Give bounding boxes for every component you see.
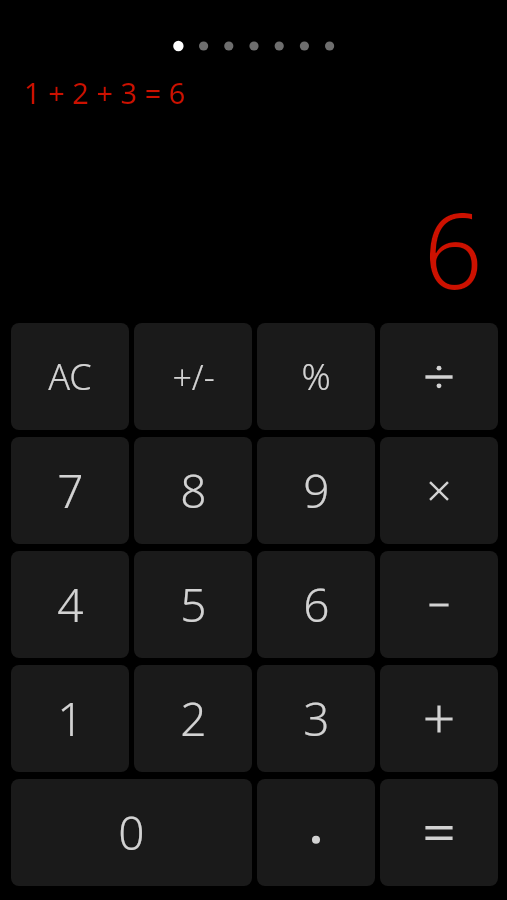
- button[interactable]: 7: [11, 437, 129, 544]
- button[interactable]: 4: [11, 551, 129, 658]
- button[interactable]: 3: [257, 665, 375, 772]
- staticText: AC: [48, 352, 92, 401]
- staticText: +/-: [172, 354, 215, 400]
- staticText: %: [301, 352, 331, 401]
- button[interactable]: 0: [11, 779, 252, 886]
- staticText: 7: [57, 459, 84, 522]
- button[interactable]: %: [257, 323, 375, 430]
- button[interactable]: 6: [257, 551, 375, 658]
- button[interactable]: 9: [257, 437, 375, 544]
- button[interactable]: Divide: [380, 323, 498, 430]
- staticText: 8: [180, 459, 207, 522]
- staticText: 1 + 2 + 3 = 6: [24, 73, 186, 112]
- button[interactable]: Multiply: [380, 437, 498, 544]
- staticText: 6: [303, 573, 330, 636]
- button[interactable]: +/-: [134, 323, 252, 430]
- staticText: 6: [423, 178, 483, 320]
- button[interactable]: 8: [134, 437, 252, 544]
- button[interactable]: AC: [11, 323, 129, 430]
- staticText: 0: [118, 801, 145, 864]
- button[interactable]: 1: [11, 665, 129, 772]
- staticText: 1: [57, 687, 84, 750]
- button[interactable]: Subtract: [380, 551, 498, 658]
- button[interactable]: Add: [380, 665, 498, 772]
- staticText: 5: [180, 573, 207, 636]
- staticText: 4: [57, 573, 84, 636]
- button[interactable]: 5: [134, 551, 252, 658]
- staticText: 9: [303, 459, 330, 522]
- button[interactable]: Equals: [380, 779, 498, 886]
- staticText: 2: [180, 687, 207, 750]
- button[interactable]: 2: [134, 665, 252, 772]
- button[interactable]: Decimal point: [257, 779, 375, 886]
- staticText: 3: [303, 687, 330, 750]
